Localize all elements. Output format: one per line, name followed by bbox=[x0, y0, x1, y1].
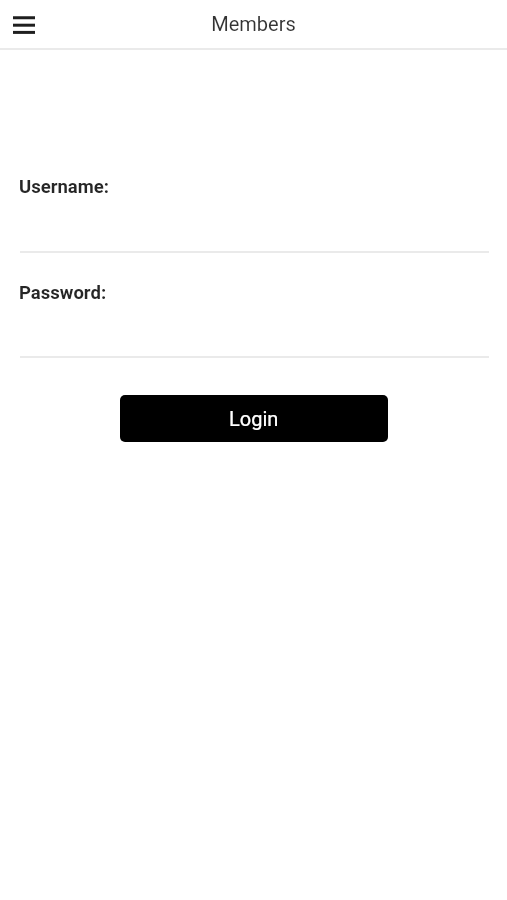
staticText: Username: bbox=[19, 176, 109, 198]
button[interactable]: Login bbox=[120, 395, 388, 442]
button[interactable]: Open navigation menu bbox=[0, 0, 48, 48]
button[interactable]: Username input field bbox=[20, 205, 489, 253]
staticText: Login bbox=[229, 407, 279, 430]
button[interactable]: Password input field bbox=[20, 310, 489, 358]
staticText: Password: bbox=[19, 282, 107, 304]
staticText: Members bbox=[211, 12, 296, 35]
